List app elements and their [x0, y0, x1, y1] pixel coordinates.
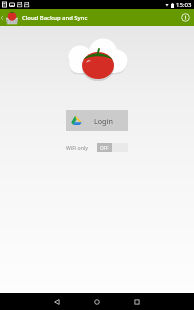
staticText: OFF — [100, 145, 109, 151]
button[interactable]: Navigate up — [0, 9, 19, 26]
staticText: 15:03 — [176, 1, 192, 9]
button[interactable]: Back — [37, 293, 77, 310]
staticText: Cloud Backup and Sync — [22, 14, 88, 22]
staticText: WiFi only — [66, 144, 88, 151]
staticText: Login — [94, 116, 113, 126]
button[interactable]: Recent apps — [117, 293, 157, 310]
button[interactable]: Login — [66, 110, 128, 131]
button[interactable]: WiFi only — [66, 141, 128, 154]
button[interactable]: Info — [177, 9, 194, 26]
button[interactable]: Home — [77, 293, 117, 310]
